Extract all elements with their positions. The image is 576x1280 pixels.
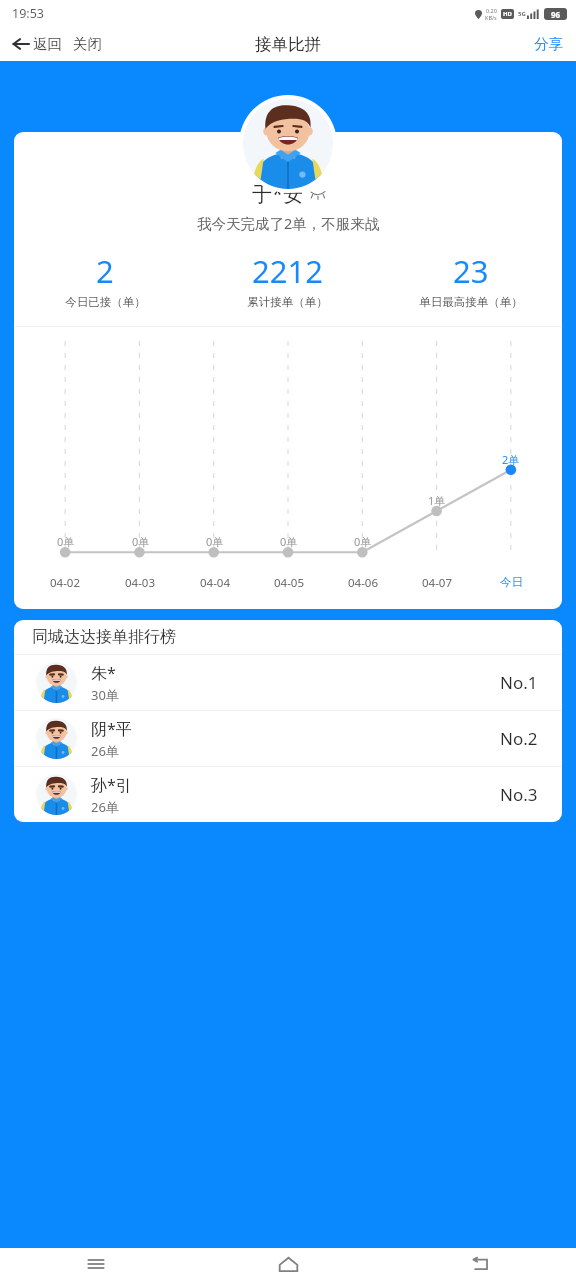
staticText: HD bbox=[503, 10, 512, 18]
staticText: 2 bbox=[96, 250, 114, 292]
staticText: 接单比拼 bbox=[255, 34, 321, 55]
staticText: 23 bbox=[453, 250, 489, 292]
staticText: 04-03 bbox=[125, 575, 156, 591]
staticText: 返回 bbox=[33, 35, 62, 53]
button[interactable]: 阴*平 bbox=[14, 711, 562, 766]
button[interactable]: 23 bbox=[379, 250, 562, 309]
staticText: 分享 bbox=[534, 35, 563, 53]
staticText: 0单 bbox=[280, 534, 298, 549]
staticText: 0单 bbox=[206, 534, 224, 549]
staticText: 孙*引 bbox=[91, 774, 132, 796]
staticText: 04-07 bbox=[422, 575, 453, 591]
staticText: 于*安 bbox=[252, 180, 304, 207]
staticText: 朱* bbox=[91, 662, 116, 684]
staticText: No.3 bbox=[500, 783, 538, 806]
staticText: 0单 bbox=[132, 534, 150, 549]
other: Recents bbox=[86, 1254, 106, 1274]
staticText: 30单 bbox=[91, 686, 119, 704]
staticText: 26单 bbox=[91, 742, 119, 760]
staticText: KB/s bbox=[485, 14, 497, 21]
staticText: 04-05 bbox=[274, 575, 305, 591]
staticText: 96 bbox=[551, 9, 561, 20]
button[interactable]: 分享 bbox=[521, 31, 576, 57]
staticText: 单日最高接单（单） bbox=[419, 295, 523, 309]
staticText: 同城达达接单排行榜 bbox=[32, 627, 176, 647]
button[interactable]: 朱* bbox=[14, 655, 562, 710]
staticText: 2单 bbox=[502, 452, 520, 467]
staticText: 26单 bbox=[91, 798, 119, 816]
other: Home bbox=[278, 1254, 299, 1275]
button[interactable]: Back bbox=[9, 32, 65, 56]
staticText: No.2 bbox=[500, 727, 538, 750]
staticText: 我今天完成了2单，不服来战 bbox=[197, 213, 380, 233]
staticText: 0.20 bbox=[486, 7, 497, 14]
button[interactable]: 2 bbox=[14, 250, 196, 309]
other: Back bbox=[470, 1254, 490, 1274]
staticText: 累计接单（单） bbox=[247, 295, 328, 309]
staticText: 1单 bbox=[428, 493, 446, 508]
button[interactable]: 孙*引 bbox=[14, 767, 562, 822]
staticText: No.1 bbox=[500, 671, 538, 694]
button[interactable]: Profile avatar bbox=[243, 99, 333, 189]
button[interactable]: 2212 bbox=[196, 250, 379, 309]
staticText: 04-02 bbox=[50, 575, 81, 591]
staticText: 阴*平 bbox=[91, 718, 132, 740]
staticText: 2212 bbox=[252, 250, 323, 292]
staticText: 关闭 bbox=[73, 35, 102, 53]
staticText: 5G bbox=[518, 10, 526, 18]
button[interactable]: Back bbox=[384, 1248, 576, 1280]
staticText: 今日已接（单） bbox=[65, 295, 146, 309]
staticText: 0单 bbox=[57, 534, 75, 549]
button[interactable]: Home bbox=[192, 1248, 384, 1280]
staticText: 19:53 bbox=[12, 5, 44, 22]
staticText: 今日 bbox=[500, 575, 523, 589]
staticText: 04-04 bbox=[200, 575, 231, 591]
button[interactable]: 关闭 bbox=[70, 32, 105, 56]
staticText: 0单 bbox=[354, 534, 372, 549]
other: Back bbox=[12, 35, 30, 53]
staticText: 04-06 bbox=[348, 575, 379, 591]
button[interactable]: Recents bbox=[0, 1248, 192, 1280]
